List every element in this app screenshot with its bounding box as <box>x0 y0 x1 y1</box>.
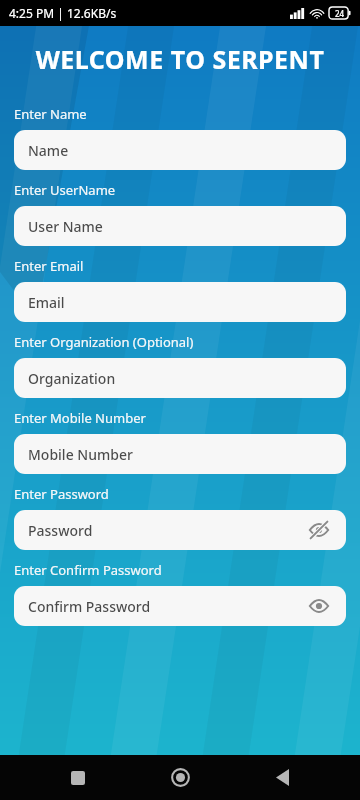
staticText: Organization <box>28 369 332 388</box>
button[interactable]: Organization <box>14 358 346 398</box>
button[interactable]: Mobile Number <box>14 434 346 474</box>
button[interactable]: User Name <box>14 206 346 246</box>
button[interactable]: Hide password <box>306 593 332 619</box>
staticText: WELCOME TO SERPENT <box>0 42 360 76</box>
button[interactable]: Recent apps <box>54 755 102 800</box>
button[interactable]: Back <box>258 755 306 800</box>
staticText: 4:25 PM | 12.6KB/s <box>9 5 117 21</box>
staticText: Enter Password <box>14 485 109 503</box>
staticText: Confirm Password <box>28 597 306 616</box>
staticText: Mobile Number <box>28 445 332 464</box>
staticText: Enter Name <box>14 105 87 123</box>
button[interactable]: Email <box>14 282 346 322</box>
button[interactable]: Show password <box>306 517 332 543</box>
staticText: Enter UserName <box>14 181 116 199</box>
button[interactable]: Confirm Password <box>14 586 346 626</box>
staticText: Email <box>28 293 332 312</box>
staticText: 24 <box>335 8 345 19</box>
staticText: Enter Organization (Optional) <box>14 333 194 351</box>
staticText: Password <box>28 521 306 540</box>
staticText: Name <box>28 141 332 160</box>
button[interactable]: Password <box>14 510 346 550</box>
button[interactable]: Name <box>14 130 346 170</box>
staticText: Enter Mobile Number <box>14 409 146 427</box>
staticText: Enter Confirm Password <box>14 561 162 579</box>
staticText: User Name <box>28 217 332 236</box>
staticText: Enter Email <box>14 257 84 275</box>
button[interactable]: Home <box>156 755 204 800</box>
